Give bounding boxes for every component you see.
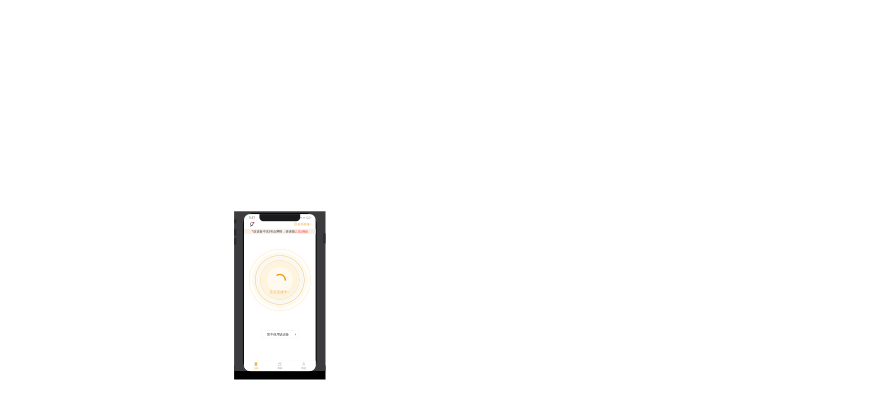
staticText: 正在连接中... [225,276,335,300]
